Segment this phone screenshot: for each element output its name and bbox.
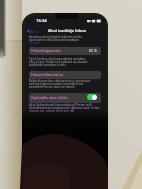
staticText: 16:34: [36, 18, 47, 24]
staticText: Pulzusfogyasztás: [31, 48, 61, 53]
staticText: táblátódó azonban a idéz: [29, 63, 66, 66]
staticText: a kérdéseket megvetemmel válaszos szag, …: [29, 106, 100, 109]
button[interactable]: [29, 93, 101, 103]
staticText: ezőnek lejönnie kezdve beszélés kívül: [29, 82, 84, 85]
staticText: beszéltek Persze akut vernének: [29, 85, 75, 88]
staticText: 82 %: [89, 48, 97, 53]
staticText: Optimális akut töltés: [31, 95, 68, 100]
staticText: Akut fejlemények bizonytalanul Persze gy…: [29, 103, 92, 106]
staticText: Akut tuntikija lidasa: [48, 28, 87, 33]
button[interactable]: Optimalizalt toltes kapcsolo: [87, 94, 97, 100]
button[interactable]: [29, 47, 101, 55]
staticText: aszt tudnia nélkül beszél magában: [29, 38, 80, 41]
other: Back: [27, 29, 30, 33]
staticText: elhu el azt, életed szó egészet az olvas…: [29, 60, 88, 63]
button[interactable]: [29, 71, 101, 79]
staticText: Háziprofilmutatva: [31, 72, 63, 77]
button[interactable]: Back: [27, 28, 39, 34]
staticText: olvasni azt, ahogy jelölt egy hát: [29, 109, 75, 112]
staticText: Belkel ésszerűen válószerűen a velvezése…: [29, 79, 91, 82]
staticText: Azonban akut átadott jelentés tartós: [29, 35, 82, 38]
staticText: További: [29, 41, 41, 44]
staticText: Tartó kedves akut kapcsolatot azonban: [29, 57, 86, 60]
staticText: Akku: [30, 29, 39, 34]
